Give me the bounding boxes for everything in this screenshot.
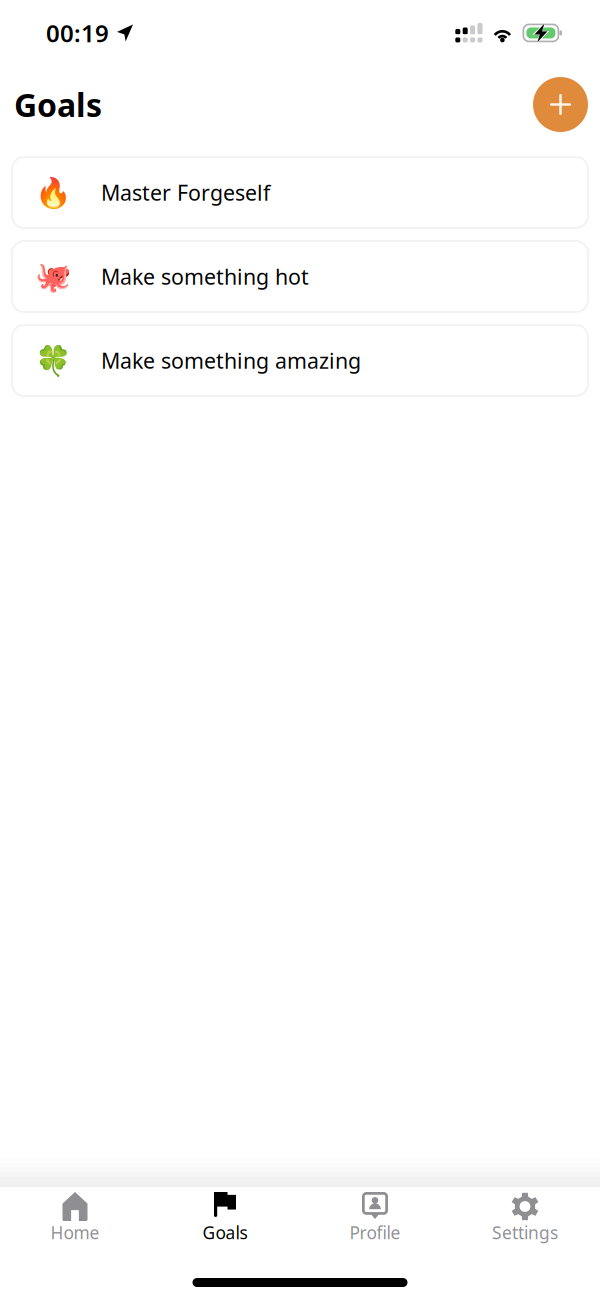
staticText: Settings — [492, 1221, 558, 1244]
button[interactable]: Profile — [300, 1192, 450, 1247]
staticText: Master Forgeself — [101, 178, 270, 207]
staticText: Goals — [202, 1221, 247, 1244]
staticText: 🍀 — [34, 344, 71, 377]
staticText: 🔥 — [34, 176, 71, 209]
staticText: 🐙 — [34, 260, 71, 293]
button[interactable]: Goals — [150, 1192, 300, 1247]
button[interactable]: Add goal — [533, 77, 588, 132]
button[interactable]: 🐙 — [12, 241, 588, 312]
staticText: Home — [50, 1221, 99, 1244]
staticText: Goals — [14, 83, 102, 126]
button[interactable]: 🍀 — [12, 325, 588, 396]
staticText: Make something amazing — [101, 346, 361, 375]
staticText: Profile — [349, 1221, 400, 1244]
staticText: Make something hot — [101, 262, 309, 291]
button[interactable]: Settings — [450, 1192, 600, 1247]
staticText: 00:19 — [46, 17, 109, 49]
button[interactable]: Home — [0, 1192, 150, 1247]
button[interactable]: 🔥 — [12, 157, 588, 228]
